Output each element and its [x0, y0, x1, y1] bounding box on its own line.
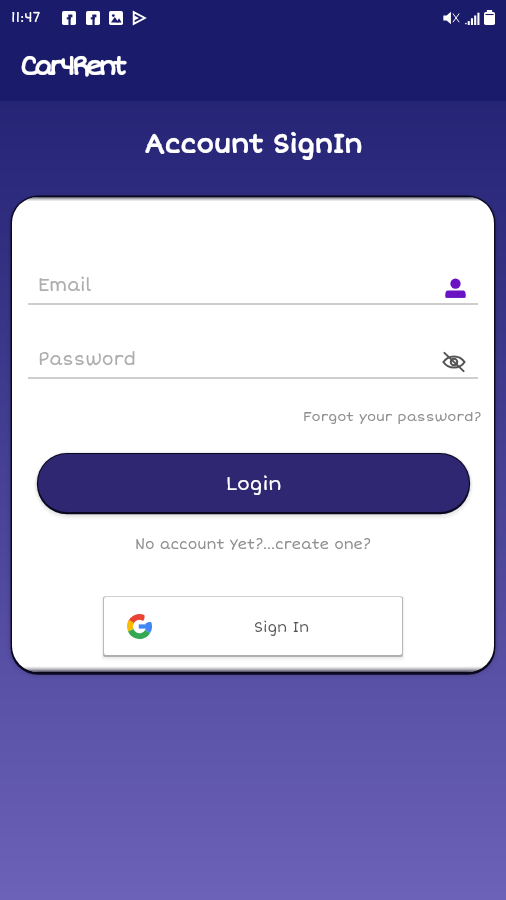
- button[interactable]: Forgot your password?: [303, 408, 482, 425]
- button[interactable]: Login: [38, 454, 469, 512]
- staticText: 11:47: [11, 9, 41, 26]
- other: Account: [445, 278, 466, 299]
- button[interactable]: Sign In: [104, 597, 402, 655]
- staticText: Sign In: [254, 618, 310, 636]
- staticText: Account SignIn: [0, 129, 506, 161]
- button[interactable]: No account Yet?...create one?: [12, 536, 494, 553]
- staticText: Password: [38, 349, 136, 371]
- other: Show password: [442, 350, 466, 374]
- staticText: Email: [38, 275, 92, 297]
- staticText: Login: [226, 472, 282, 495]
- staticText: Car4Rent: [20, 52, 124, 83]
